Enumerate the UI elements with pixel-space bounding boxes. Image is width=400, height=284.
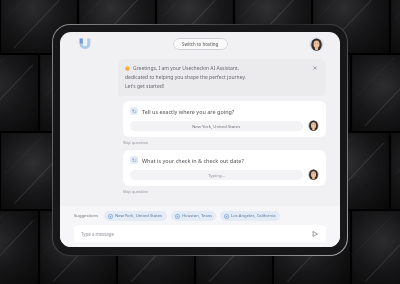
staticText: Greetings, I am your Usecheckin AI Assis… xyxy=(133,65,239,72)
staticText: dedicated to helping you shape the perfe… xyxy=(125,74,247,81)
button[interactable]: Dismiss xyxy=(312,65,318,71)
button[interactable]: Typing... xyxy=(130,170,303,180)
staticText: Los Angeles, California xyxy=(231,213,276,219)
staticText: Skip question xyxy=(123,189,149,194)
staticText: Type a message xyxy=(81,231,114,237)
button[interactable]: Switch to hosting xyxy=(173,38,228,50)
staticText: New York, United States xyxy=(192,123,241,129)
button[interactable]: Type a message xyxy=(81,231,311,237)
button[interactable]: Skip question xyxy=(123,189,149,194)
button[interactable]: Los Angeles, California xyxy=(220,211,280,221)
button[interactable]: Houston, Texas xyxy=(171,211,216,221)
staticText: Suggestions xyxy=(74,213,99,219)
button[interactable]: Skip question xyxy=(123,140,149,145)
button[interactable]: New York, United States xyxy=(104,211,167,221)
staticText: New York, United States xyxy=(115,213,163,219)
staticText: Let's get started! xyxy=(125,83,165,90)
button[interactable]: Usecheckin home xyxy=(78,37,92,51)
button[interactable]: New York, United States xyxy=(130,121,303,131)
staticText: Typing... xyxy=(208,172,225,178)
staticText: Houston, Texas xyxy=(182,213,212,219)
staticText: Tell us exactly where you are going? xyxy=(142,108,235,115)
staticText: Skip question xyxy=(123,140,149,145)
button[interactable]: Send xyxy=(311,230,319,238)
staticText: What is your check in & check out date? xyxy=(142,157,244,164)
button[interactable]: Profile xyxy=(310,38,323,51)
staticText: Switch to hosting xyxy=(182,41,219,47)
